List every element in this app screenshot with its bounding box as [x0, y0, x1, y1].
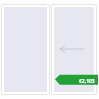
staticText: €2,105: [79, 78, 95, 85]
button[interactable]: €2,105: [55, 74, 98, 86]
other: Transfer direction: [58, 43, 86, 55]
button[interactable]: [51, 4, 97, 95]
button[interactable]: [1, 4, 50, 95]
